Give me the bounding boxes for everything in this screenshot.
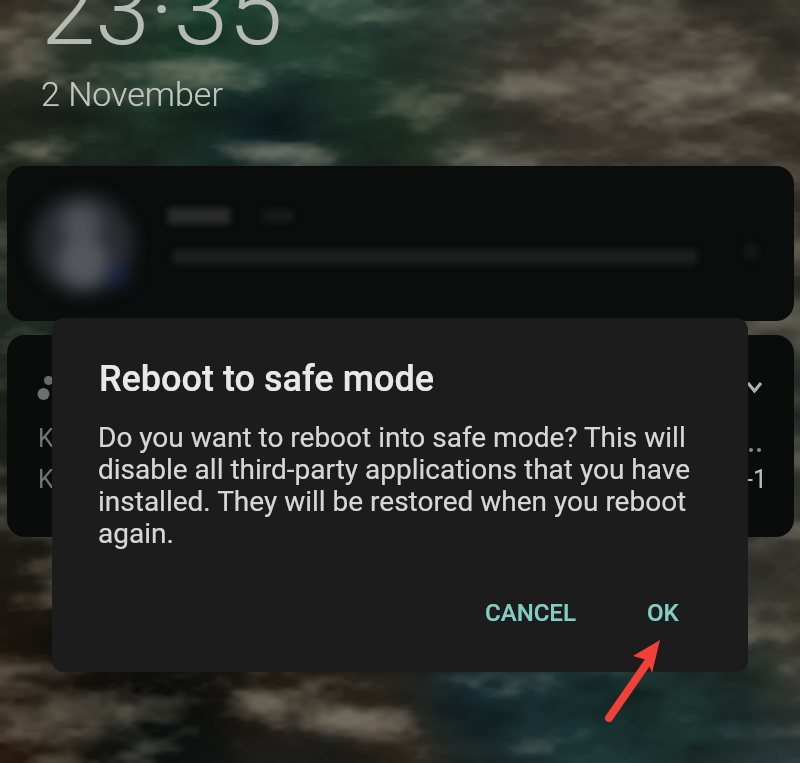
staticText: Reboot to safe mode [99,358,435,400]
staticText: K [38,424,54,453]
staticText: -1 [746,465,767,494]
button[interactable] [7,166,794,321]
button[interactable]: CANCEL [463,585,598,641]
staticText: CANCEL [485,599,576,627]
other: Annotation arrow pointing to OK [598,630,674,730]
button[interactable]: OK [625,585,701,641]
button[interactable]: K [7,335,794,537]
staticText: Do you want to reboot into safe mode? Th… [98,421,698,550]
staticText: 2 November [41,74,223,114]
staticText: 23·35 [41,0,283,68]
staticText: OK [647,599,679,627]
staticText: K [38,465,54,494]
